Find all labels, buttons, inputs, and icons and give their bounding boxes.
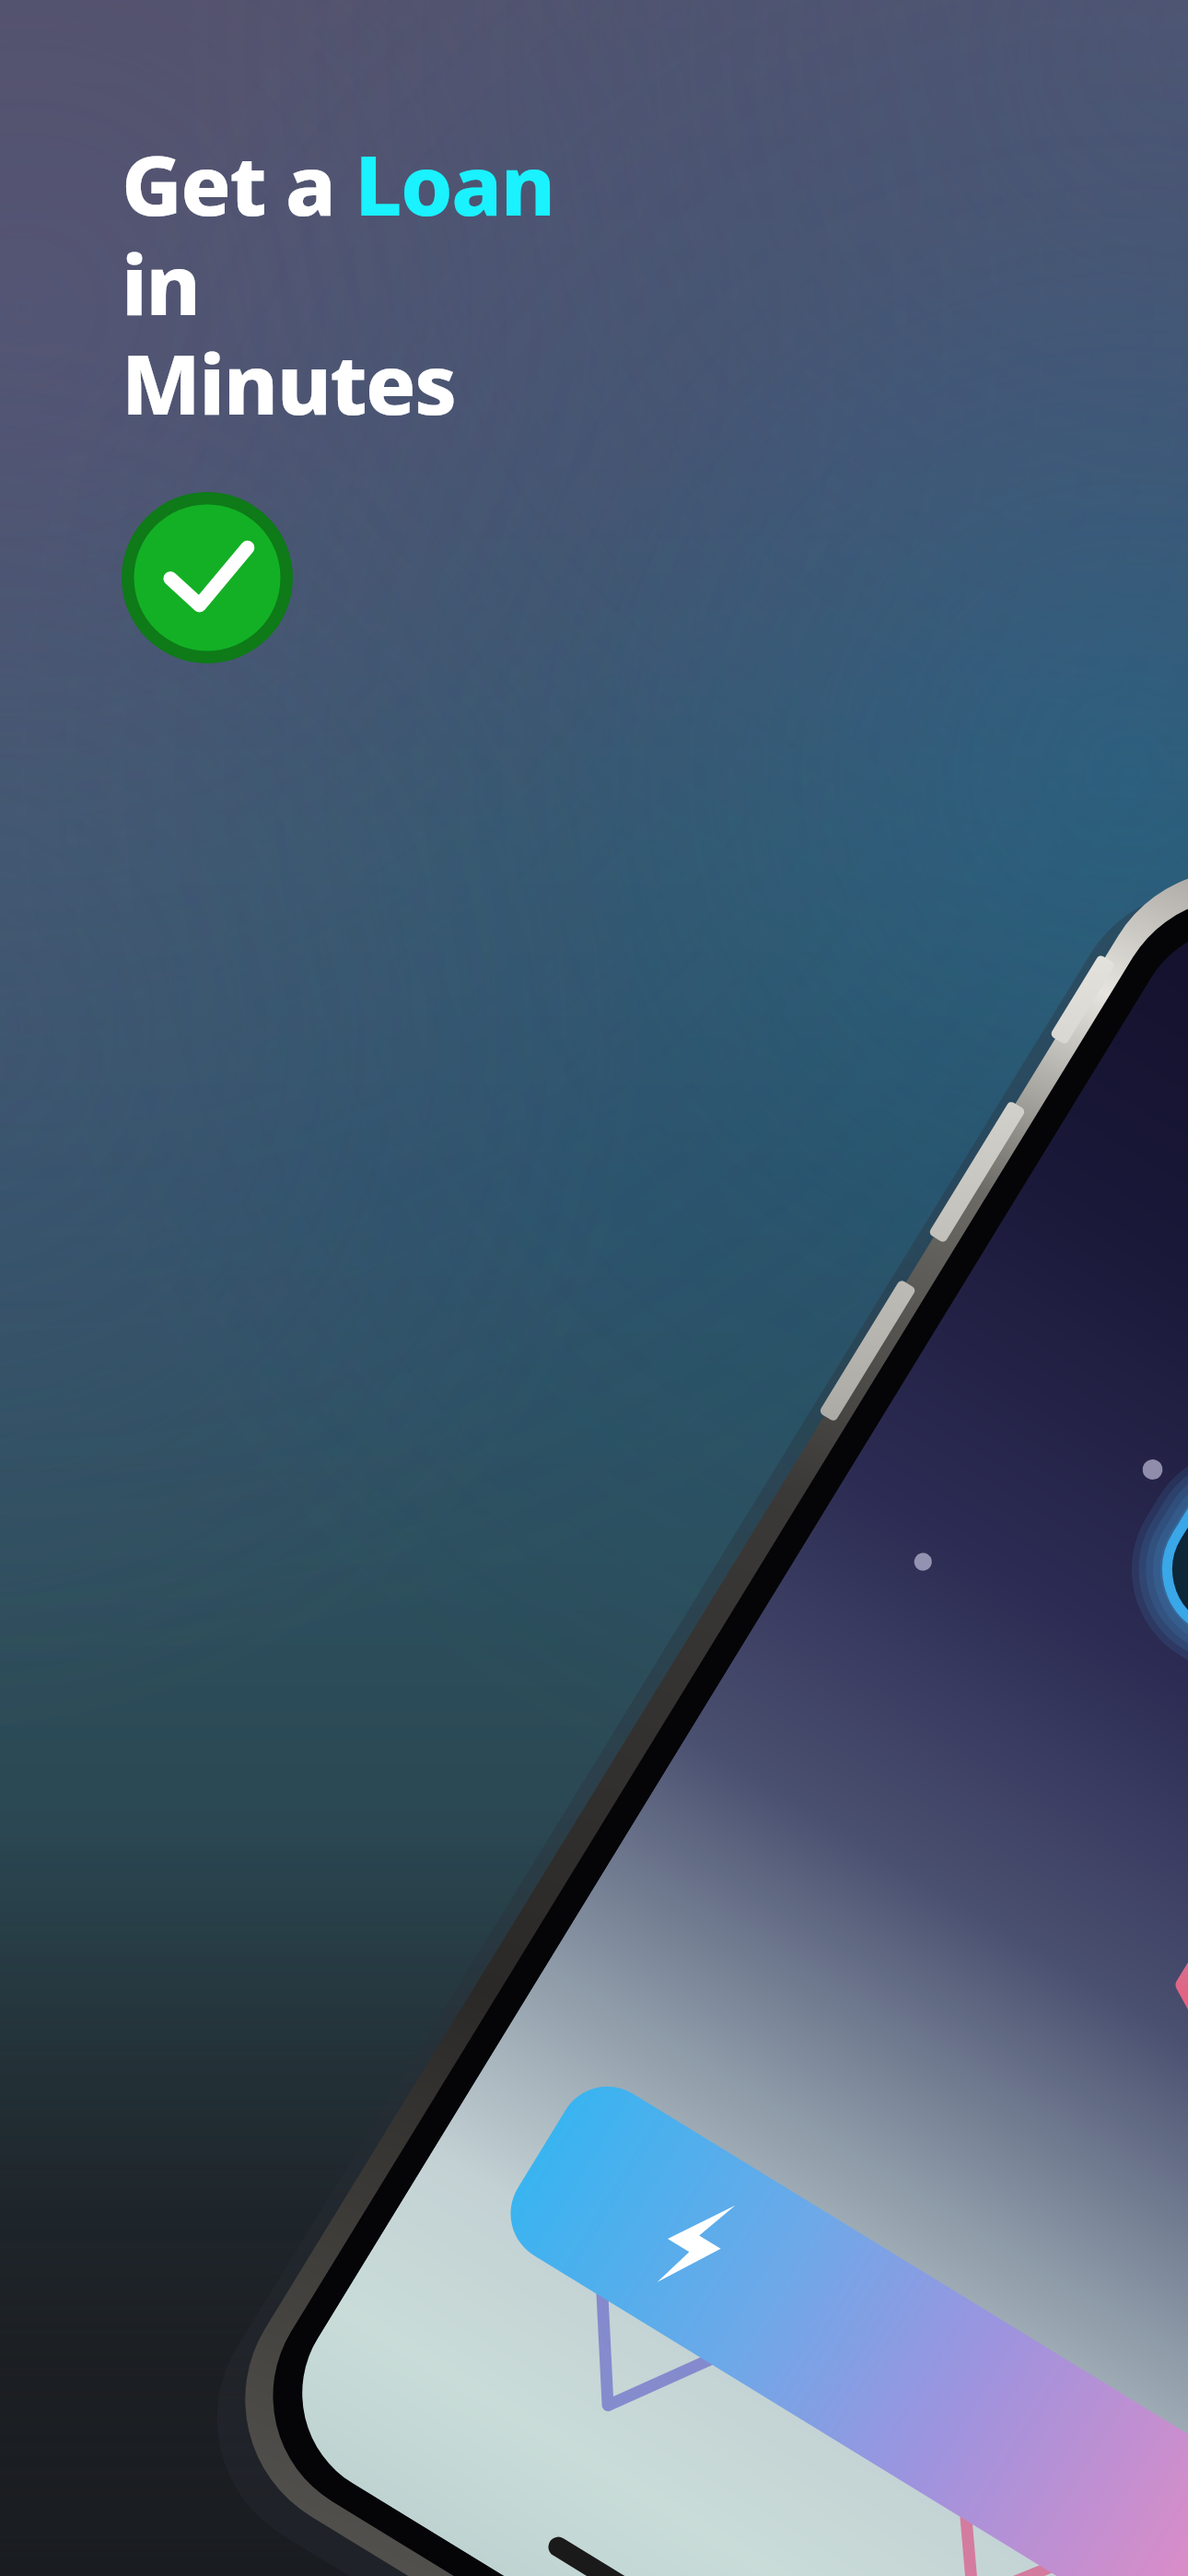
button[interactable]: Approved [122, 492, 293, 663]
button[interactable]: Get a Loan in Minutes [122, 127, 554, 439]
staticText: Get a Loan in Minutes [122, 127, 554, 439]
